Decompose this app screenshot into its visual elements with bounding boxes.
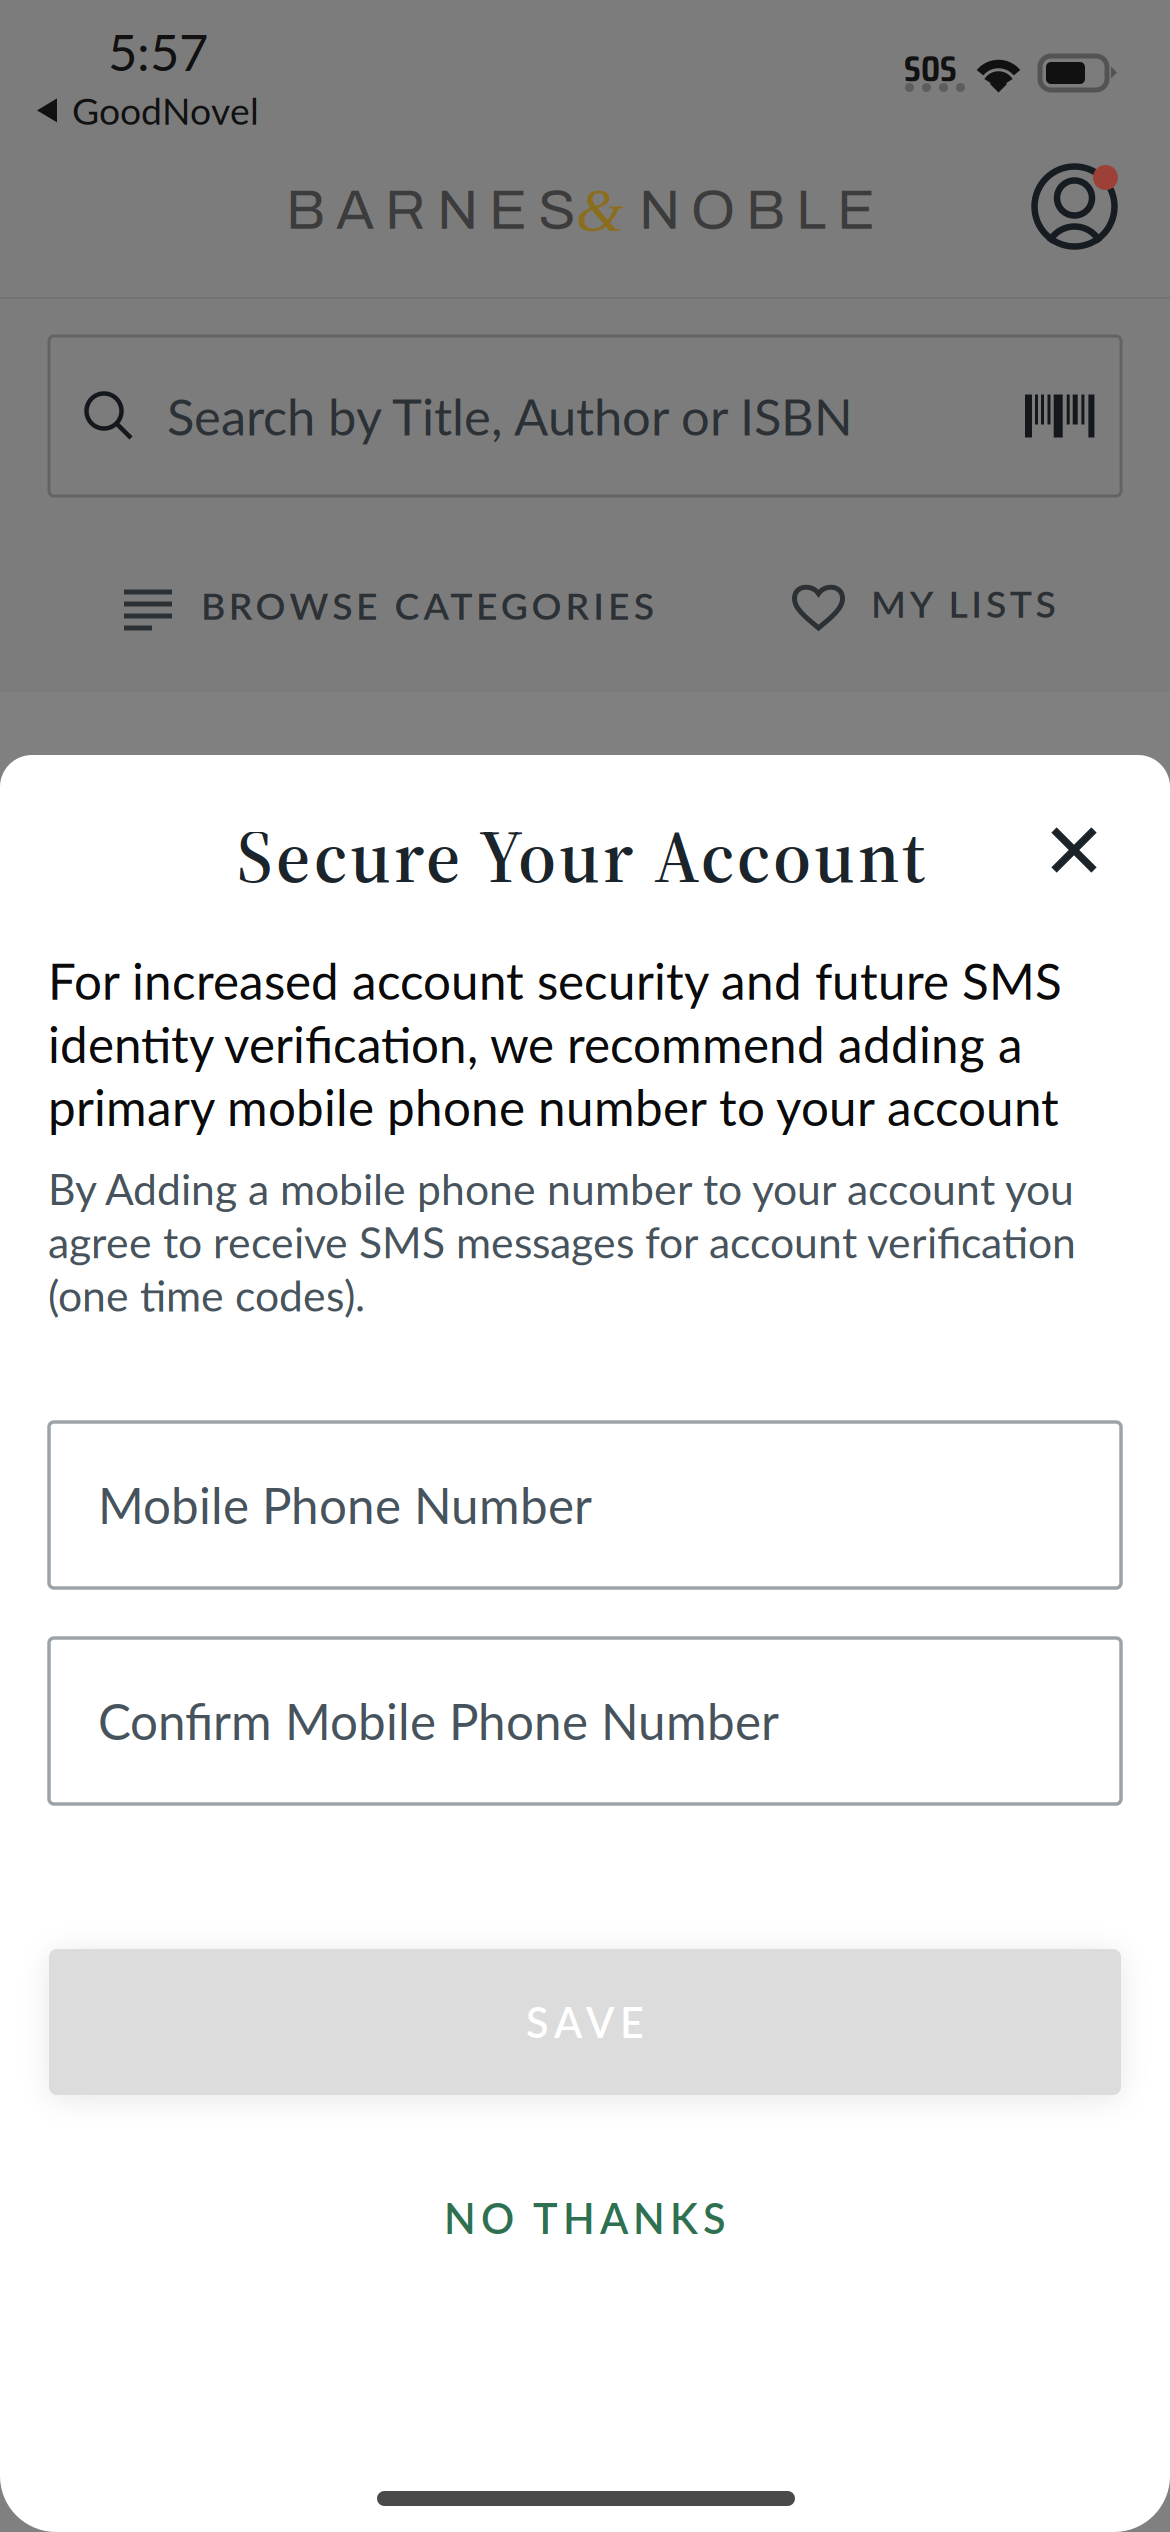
button[interactable]: Search by Title, Author or ISBN xyxy=(49,336,1121,496)
staticText: By Adding a mobile phone number to your … xyxy=(48,1163,1076,1321)
staticText: Search by Title, Author or ISBN xyxy=(167,386,853,446)
button[interactable]: Account xyxy=(1031,163,1118,250)
staticText: BROWSE CATEGORIES xyxy=(201,583,654,628)
staticText: GoodNovel xyxy=(72,88,259,133)
button[interactable]: MY LISTS xyxy=(791,581,1053,629)
staticText: & xyxy=(576,176,624,244)
staticText: Mobile Phone Number xyxy=(98,1475,592,1535)
staticText: BARNES xyxy=(286,179,576,240)
button[interactable]: Close xyxy=(1051,827,1097,873)
button[interactable]: BROWSE CATEGORIES xyxy=(124,583,652,631)
staticText: SAVE xyxy=(526,1997,644,2047)
staticText: Confirm Mobile Phone Number xyxy=(98,1691,779,1751)
staticText: NO THANKS xyxy=(444,2193,726,2243)
staticText: Secure Your Account xyxy=(237,806,925,906)
staticText: MY LISTS xyxy=(871,581,1056,626)
staticText: SOS xyxy=(904,39,957,98)
staticText: For increased account security and futur… xyxy=(48,951,1062,1137)
staticText: 5:57 xyxy=(108,21,208,82)
staticText: NOBLE xyxy=(639,179,875,240)
button[interactable]: NO THANKS xyxy=(49,2172,1121,2264)
